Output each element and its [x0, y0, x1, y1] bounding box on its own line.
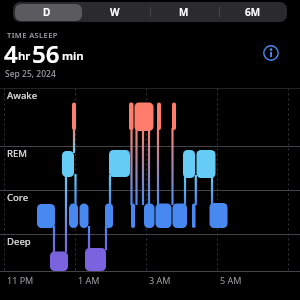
button[interactable]: M: [149, 2, 218, 22]
staticText: Awake: [7, 89, 38, 102]
staticText: 4: [4, 37, 18, 70]
staticText: Core: [7, 191, 29, 204]
staticText: 11 PM: [7, 274, 34, 286]
staticText: 3 AM: [149, 274, 171, 286]
staticText: TIME ASLEEP: [7, 30, 58, 40]
staticText: Deep: [7, 235, 31, 248]
button[interactable]: D: [13, 2, 81, 22]
staticText: 5 AM: [220, 274, 242, 286]
staticText: hr: [18, 48, 31, 64]
staticText: W: [110, 5, 120, 19]
staticText: D: [43, 5, 51, 19]
button[interactable]: W: [81, 2, 149, 22]
staticText: REM: [7, 147, 28, 160]
button[interactable]: 6M: [218, 2, 287, 22]
staticText: 6M: [245, 5, 261, 19]
staticText: min: [62, 48, 84, 64]
button[interactable]: [262, 44, 280, 62]
staticText: M: [179, 5, 189, 19]
staticText: 56: [32, 37, 60, 70]
staticText: 1 AM: [78, 274, 100, 286]
staticText: Sep 25, 2024: [5, 68, 56, 80]
